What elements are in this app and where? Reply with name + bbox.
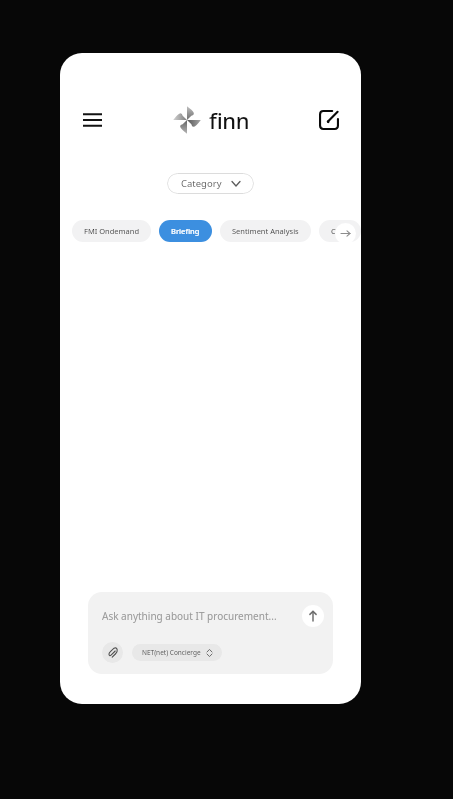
button[interactable]: FMI Ondemand <box>72 220 151 242</box>
button[interactable]: Briefing <box>159 220 212 242</box>
button[interactable]: New chat <box>309 100 349 140</box>
staticText: Ask anything about IT procurement... <box>102 609 302 623</box>
button[interactable]: Send <box>302 605 324 627</box>
button[interactable]: Competitive Assessment <box>319 220 361 242</box>
button[interactable]: Ask anything about IT procurement... <box>88 592 333 674</box>
staticText: Category <box>181 177 222 190</box>
staticText: NET(net) Concierge <box>142 648 201 657</box>
staticText: FMI Ondemand <box>84 226 139 236</box>
button[interactable]: More categories <box>335 223 356 244</box>
button[interactable]: Sentiment Analysis <box>220 220 311 242</box>
staticText: Competitive Assessment <box>331 226 349 236</box>
staticText: Briefing <box>171 226 200 236</box>
button[interactable]: Menu <box>72 100 112 140</box>
staticText: Sentiment Analysis <box>232 226 299 236</box>
button[interactable]: Category <box>167 173 254 194</box>
staticText: finn <box>209 105 250 135</box>
button[interactable]: NET(net) Concierge <box>132 644 222 661</box>
button[interactable]: Attach file <box>102 642 123 663</box>
